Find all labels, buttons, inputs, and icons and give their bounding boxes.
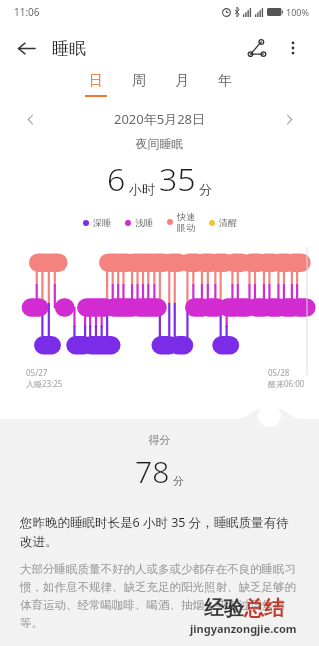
button[interactable]: More options: [275, 30, 311, 66]
staticText: 分: [173, 474, 184, 488]
staticText: 清醒: [219, 217, 237, 228]
staticText: 总结: [244, 596, 284, 621]
staticText: 分: [199, 181, 212, 197]
staticText: 2020年5月28日: [114, 110, 206, 128]
staticText: 35: [159, 157, 196, 201]
staticText: 11:06: [14, 5, 40, 19]
button[interactable]: 年: [203, 72, 246, 95]
staticText: 经验: [204, 596, 244, 621]
staticText: 浅睡: [135, 217, 153, 228]
staticText: 您昨晚的睡眠时长是6 小时 35 分，睡眠质量有待改进。: [20, 514, 299, 550]
staticText: 醒来06:00: [268, 378, 305, 389]
staticText: 入睡23:25: [26, 378, 63, 389]
staticText: 05/28: [268, 367, 290, 378]
staticText: 年: [218, 72, 232, 90]
staticText: 6: [107, 157, 126, 201]
staticText: 快速: [177, 211, 195, 222]
button[interactable]: 月: [160, 72, 203, 95]
staticText: 深睡: [93, 217, 111, 228]
button[interactable]: Share: [239, 30, 275, 66]
staticText: 夜间睡眠: [0, 136, 319, 151]
staticText: 睡眠: [52, 38, 86, 59]
staticText: 月: [175, 72, 189, 90]
staticText: 眼动: [177, 222, 195, 233]
staticText: 小时: [129, 181, 155, 197]
staticText: 周: [132, 72, 146, 90]
button[interactable]: Previous day: [18, 107, 42, 131]
staticText: 100%: [286, 6, 309, 18]
staticText: 78: [135, 451, 170, 492]
staticText: jingyanzongjie.com: [190, 621, 297, 636]
button[interactable]: Next day: [277, 107, 301, 131]
button[interactable]: Back: [8, 30, 44, 66]
staticText: 得分: [0, 433, 319, 447]
staticText: 05/27: [26, 367, 48, 378]
button[interactable]: 日: [74, 72, 117, 97]
button[interactable]: 周: [117, 72, 160, 95]
staticText: 日: [89, 72, 103, 90]
staticText: 大部分睡眠质量不好的人或多或少都存在不良的睡眠习惯，如作息不规律、缺乏充足的阳光…: [20, 562, 299, 631]
